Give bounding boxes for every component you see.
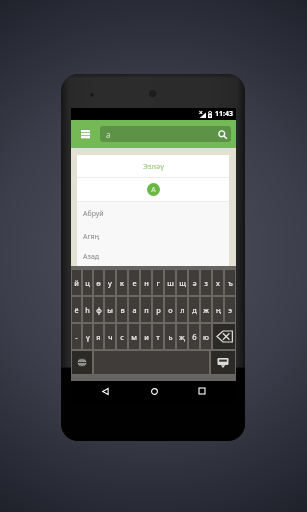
staticText: в	[120, 305, 125, 315]
button[interactable]: ё	[72, 297, 81, 322]
button[interactable]: ң	[213, 297, 223, 322]
button[interactable]: җ	[177, 324, 187, 349]
staticText: җ	[179, 332, 185, 342]
button[interactable]: a	[100, 126, 231, 142]
button[interactable]: а	[129, 297, 139, 322]
staticText: a	[106, 129, 111, 140]
button[interactable]: м	[129, 324, 139, 349]
staticText: ә	[192, 278, 197, 288]
button[interactable]: у	[105, 270, 115, 295]
staticText: ъ	[228, 278, 233, 288]
button[interactable]: Home	[145, 382, 163, 400]
button[interactable]: т	[153, 324, 163, 349]
button[interactable]: Recent apps	[193, 382, 211, 400]
staticText: а	[132, 305, 137, 315]
button[interactable]: в	[117, 297, 127, 322]
button[interactable]: и	[141, 324, 151, 349]
staticText: ь	[168, 332, 173, 342]
button[interactable]: я	[94, 324, 103, 349]
staticText: ё	[74, 305, 79, 315]
button[interactable]: Switch keyboard language	[72, 351, 92, 374]
staticText: Абруй	[83, 209, 104, 219]
button[interactable]: о	[165, 297, 175, 322]
staticText: 11:43	[215, 109, 233, 119]
staticText: ж	[203, 305, 209, 315]
button[interactable]: ь	[165, 324, 175, 349]
button[interactable]: д	[189, 297, 199, 322]
button[interactable]: э	[225, 297, 235, 322]
staticText: р	[156, 305, 161, 315]
button[interactable]: н	[141, 270, 151, 295]
button[interactable]: л	[177, 297, 187, 322]
button[interactable]: з	[201, 270, 211, 295]
button[interactable]: ү	[83, 324, 92, 349]
staticText: ы	[107, 305, 113, 315]
button[interactable]: п	[141, 297, 151, 322]
staticText: л	[180, 305, 185, 315]
button[interactable]: Open navigation menu	[76, 125, 94, 143]
staticText: ф	[96, 305, 102, 315]
button[interactable]: ъ	[225, 270, 235, 295]
staticText: н	[144, 278, 149, 288]
button[interactable]: б	[189, 324, 199, 349]
button[interactable]: ы	[105, 297, 115, 322]
button[interactable]: р	[153, 297, 163, 322]
staticText: ң	[216, 305, 221, 315]
button[interactable]: Account A	[147, 183, 160, 196]
staticText: ч	[108, 332, 113, 342]
button[interactable]: -	[72, 324, 81, 349]
button[interactable]: ц	[83, 270, 92, 295]
button[interactable]: ш	[165, 270, 175, 295]
staticText: Агяң	[83, 232, 100, 242]
staticText: м	[131, 332, 137, 342]
staticText: и	[144, 332, 149, 342]
staticText: Азад	[83, 252, 100, 262]
button[interactable]: Азад	[77, 248, 229, 266]
staticText: һ	[85, 305, 90, 315]
button[interactable]: һ	[83, 297, 92, 322]
staticText: т	[156, 332, 160, 342]
button[interactable]: Абруй	[77, 202, 229, 225]
button[interactable]: ф	[94, 297, 103, 322]
staticText: б	[192, 332, 197, 342]
staticText: я	[96, 332, 101, 342]
button[interactable]: х	[213, 270, 223, 295]
staticText: Эзләү	[143, 161, 164, 171]
staticText: е	[132, 278, 137, 288]
button[interactable]: Hide keyboard	[211, 351, 235, 374]
button[interactable]: Back	[96, 382, 114, 400]
staticText: й	[74, 278, 79, 288]
staticText: к	[120, 278, 124, 288]
button[interactable]: к	[117, 270, 127, 295]
button[interactable]: щ	[177, 270, 187, 295]
staticText: х	[216, 278, 220, 288]
staticText: ө	[96, 278, 101, 288]
button[interactable]: ж	[201, 297, 211, 322]
button[interactable]: ю	[201, 324, 211, 349]
staticText: о	[168, 305, 173, 315]
staticText: A	[151, 185, 156, 195]
staticText: г	[156, 278, 160, 288]
button[interactable]: г	[153, 270, 163, 295]
staticText: у	[108, 278, 112, 288]
staticText: ш	[167, 278, 174, 288]
button[interactable]: Backspace	[213, 324, 235, 349]
button[interactable]: Агяң	[77, 225, 229, 248]
staticText: -	[75, 332, 78, 342]
button[interactable]: ө	[94, 270, 103, 295]
staticText: с	[120, 332, 124, 342]
staticText: п	[144, 305, 149, 315]
button[interactable]: с	[117, 324, 127, 349]
button[interactable]: й	[72, 270, 81, 295]
staticText: ю	[203, 332, 209, 342]
button[interactable]: е	[129, 270, 139, 295]
staticText: з	[204, 278, 208, 288]
staticText: д	[192, 305, 197, 315]
button[interactable]: ч	[105, 324, 115, 349]
staticText: щ	[179, 278, 186, 288]
staticText: ү	[86, 332, 90, 342]
staticText: э	[228, 305, 232, 315]
staticText: ц	[85, 278, 90, 288]
button[interactable]: ә	[189, 270, 199, 295]
